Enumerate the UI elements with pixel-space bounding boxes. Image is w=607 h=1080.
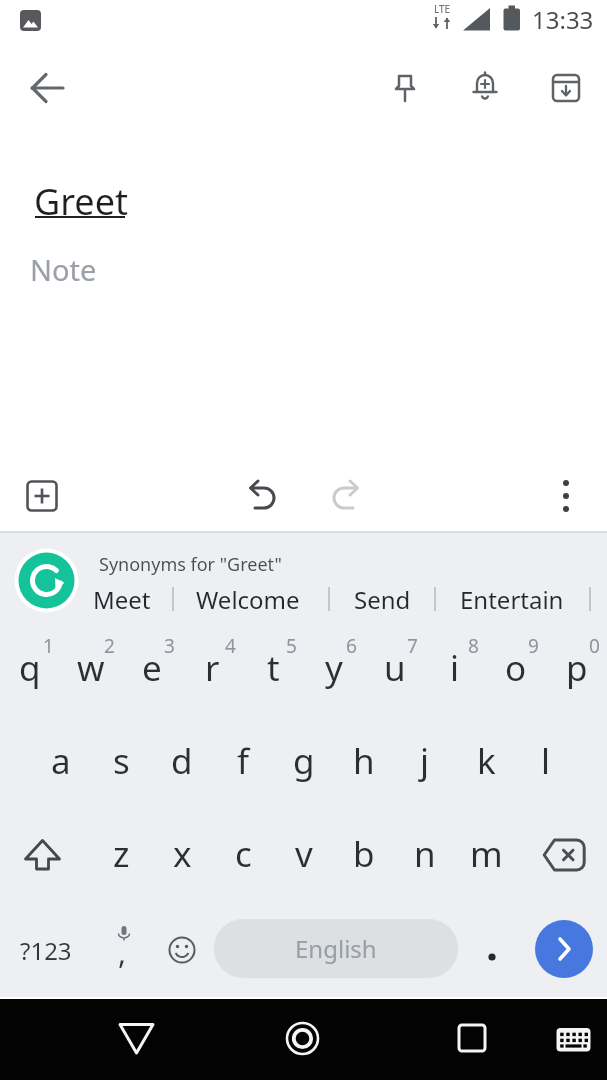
button[interactable]: k: [458, 726, 514, 796]
staticText: u: [384, 644, 406, 692]
staticText: d: [171, 737, 193, 785]
button[interactable]: g: [276, 726, 332, 796]
button[interactable]: d: [154, 726, 210, 796]
staticText: h: [353, 737, 375, 785]
button[interactable]: ?123: [6, 930, 86, 970]
button[interactable]: [25, 66, 69, 110]
button[interactable]: o: [488, 633, 544, 703]
button[interactable]: c: [215, 819, 271, 889]
button[interactable]: Meet: [67, 582, 177, 616]
staticText: s: [113, 737, 130, 785]
staticText: 1: [43, 633, 54, 657]
staticText: n: [414, 830, 436, 878]
button[interactable]: [20, 835, 66, 881]
staticText: i: [450, 644, 460, 692]
staticText: q: [19, 644, 41, 692]
button[interactable]: [13, 547, 80, 614]
button[interactable]: English: [214, 919, 458, 978]
staticText: 13:33: [532, 3, 594, 33]
staticText: r: [205, 644, 220, 692]
staticText: LTE: [434, 2, 451, 16]
staticText: l: [541, 737, 551, 785]
staticText: y: [325, 644, 343, 692]
button[interactable]: [540, 836, 588, 884]
staticText: Welcome: [196, 583, 300, 616]
staticText: j: [420, 737, 430, 785]
button[interactable]: x: [154, 819, 210, 889]
button[interactable]: [552, 1022, 594, 1064]
staticText: 5: [286, 633, 297, 657]
staticText: w: [77, 644, 105, 692]
staticText: o: [505, 644, 527, 692]
button[interactable]: [535, 920, 593, 978]
staticText: c: [235, 830, 252, 878]
staticText: Entertain: [460, 583, 564, 616]
button[interactable]: z: [93, 819, 149, 889]
button[interactable]: u: [367, 633, 423, 703]
staticText: 3: [164, 633, 175, 657]
staticText: 7: [407, 633, 418, 657]
button[interactable]: f: [215, 726, 271, 796]
staticText: e: [142, 644, 162, 692]
staticText: x: [173, 830, 192, 878]
button[interactable]: a: [33, 726, 89, 796]
staticText: p: [566, 644, 588, 692]
staticText: k: [477, 737, 496, 785]
staticText: 8: [468, 633, 479, 657]
button[interactable]: j: [397, 726, 453, 796]
staticText: Note: [30, 250, 97, 289]
button[interactable]: [465, 68, 505, 108]
button[interactable]: Welcome: [178, 582, 318, 616]
staticText: 9: [528, 633, 539, 657]
staticText: a: [51, 737, 71, 785]
button[interactable]: w: [63, 633, 119, 703]
button[interactable]: [26, 480, 58, 512]
button[interactable]: [115, 1018, 159, 1062]
button[interactable]: r: [184, 633, 240, 703]
button[interactable]: [385, 68, 425, 108]
staticText: 6: [346, 633, 357, 657]
staticText: f: [237, 737, 250, 785]
button[interactable]: n: [397, 819, 453, 889]
staticText: 0: [589, 633, 600, 657]
button[interactable]: Entertain: [442, 582, 582, 616]
button[interactable]: s: [93, 726, 149, 796]
button[interactable]: [480, 936, 504, 960]
button[interactable]: [552, 476, 580, 504]
button[interactable]: [450, 1016, 494, 1060]
button[interactable]: m: [458, 819, 514, 889]
staticText: ,: [118, 932, 127, 973]
staticText: z: [113, 830, 130, 878]
button[interactable]: [112, 924, 136, 948]
staticText: t: [267, 644, 280, 692]
button[interactable]: [280, 1016, 325, 1061]
button[interactable]: h: [336, 726, 392, 796]
button[interactable]: [546, 68, 586, 108]
button[interactable]: p: [549, 633, 605, 703]
button[interactable]: i: [427, 633, 483, 703]
staticText: Greet: [34, 177, 128, 223]
staticText: Synonyms for "Greet": [99, 552, 282, 576]
staticText: 2: [104, 633, 115, 657]
staticText: ?123: [20, 934, 72, 967]
staticText: Meet: [93, 583, 151, 616]
button[interactable]: y: [306, 633, 362, 703]
button[interactable]: l: [518, 726, 574, 796]
button[interactable]: q: [2, 633, 58, 703]
staticText: 4: [225, 633, 236, 657]
button[interactable]: ,: [107, 930, 137, 974]
button[interactable]: v: [276, 819, 332, 889]
staticText: m: [470, 830, 503, 878]
button[interactable]: [168, 936, 198, 966]
staticText: v: [295, 830, 313, 878]
staticText: b: [353, 830, 375, 878]
staticText: English: [295, 932, 377, 965]
button[interactable]: t: [245, 633, 301, 703]
button[interactable]: Send: [327, 582, 437, 616]
button[interactable]: b: [336, 819, 392, 889]
button[interactable]: e: [124, 633, 180, 703]
staticText: Send: [354, 583, 411, 616]
staticText: g: [293, 737, 315, 785]
button[interactable]: [243, 476, 285, 518]
button[interactable]: [323, 476, 365, 518]
